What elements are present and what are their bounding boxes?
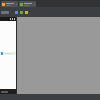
button[interactable]: Preview window title bar (0, 17, 16, 21)
button[interactable] (19, 1, 36, 7)
button[interactable] (1, 1, 18, 7)
button[interactable] (0, 21, 16, 89)
button[interactable]: Run (14, 10, 18, 14)
button[interactable]: Debug (19, 10, 23, 14)
button[interactable]: Build (24, 10, 28, 14)
button[interactable]: Module selector (1, 11, 9, 14)
